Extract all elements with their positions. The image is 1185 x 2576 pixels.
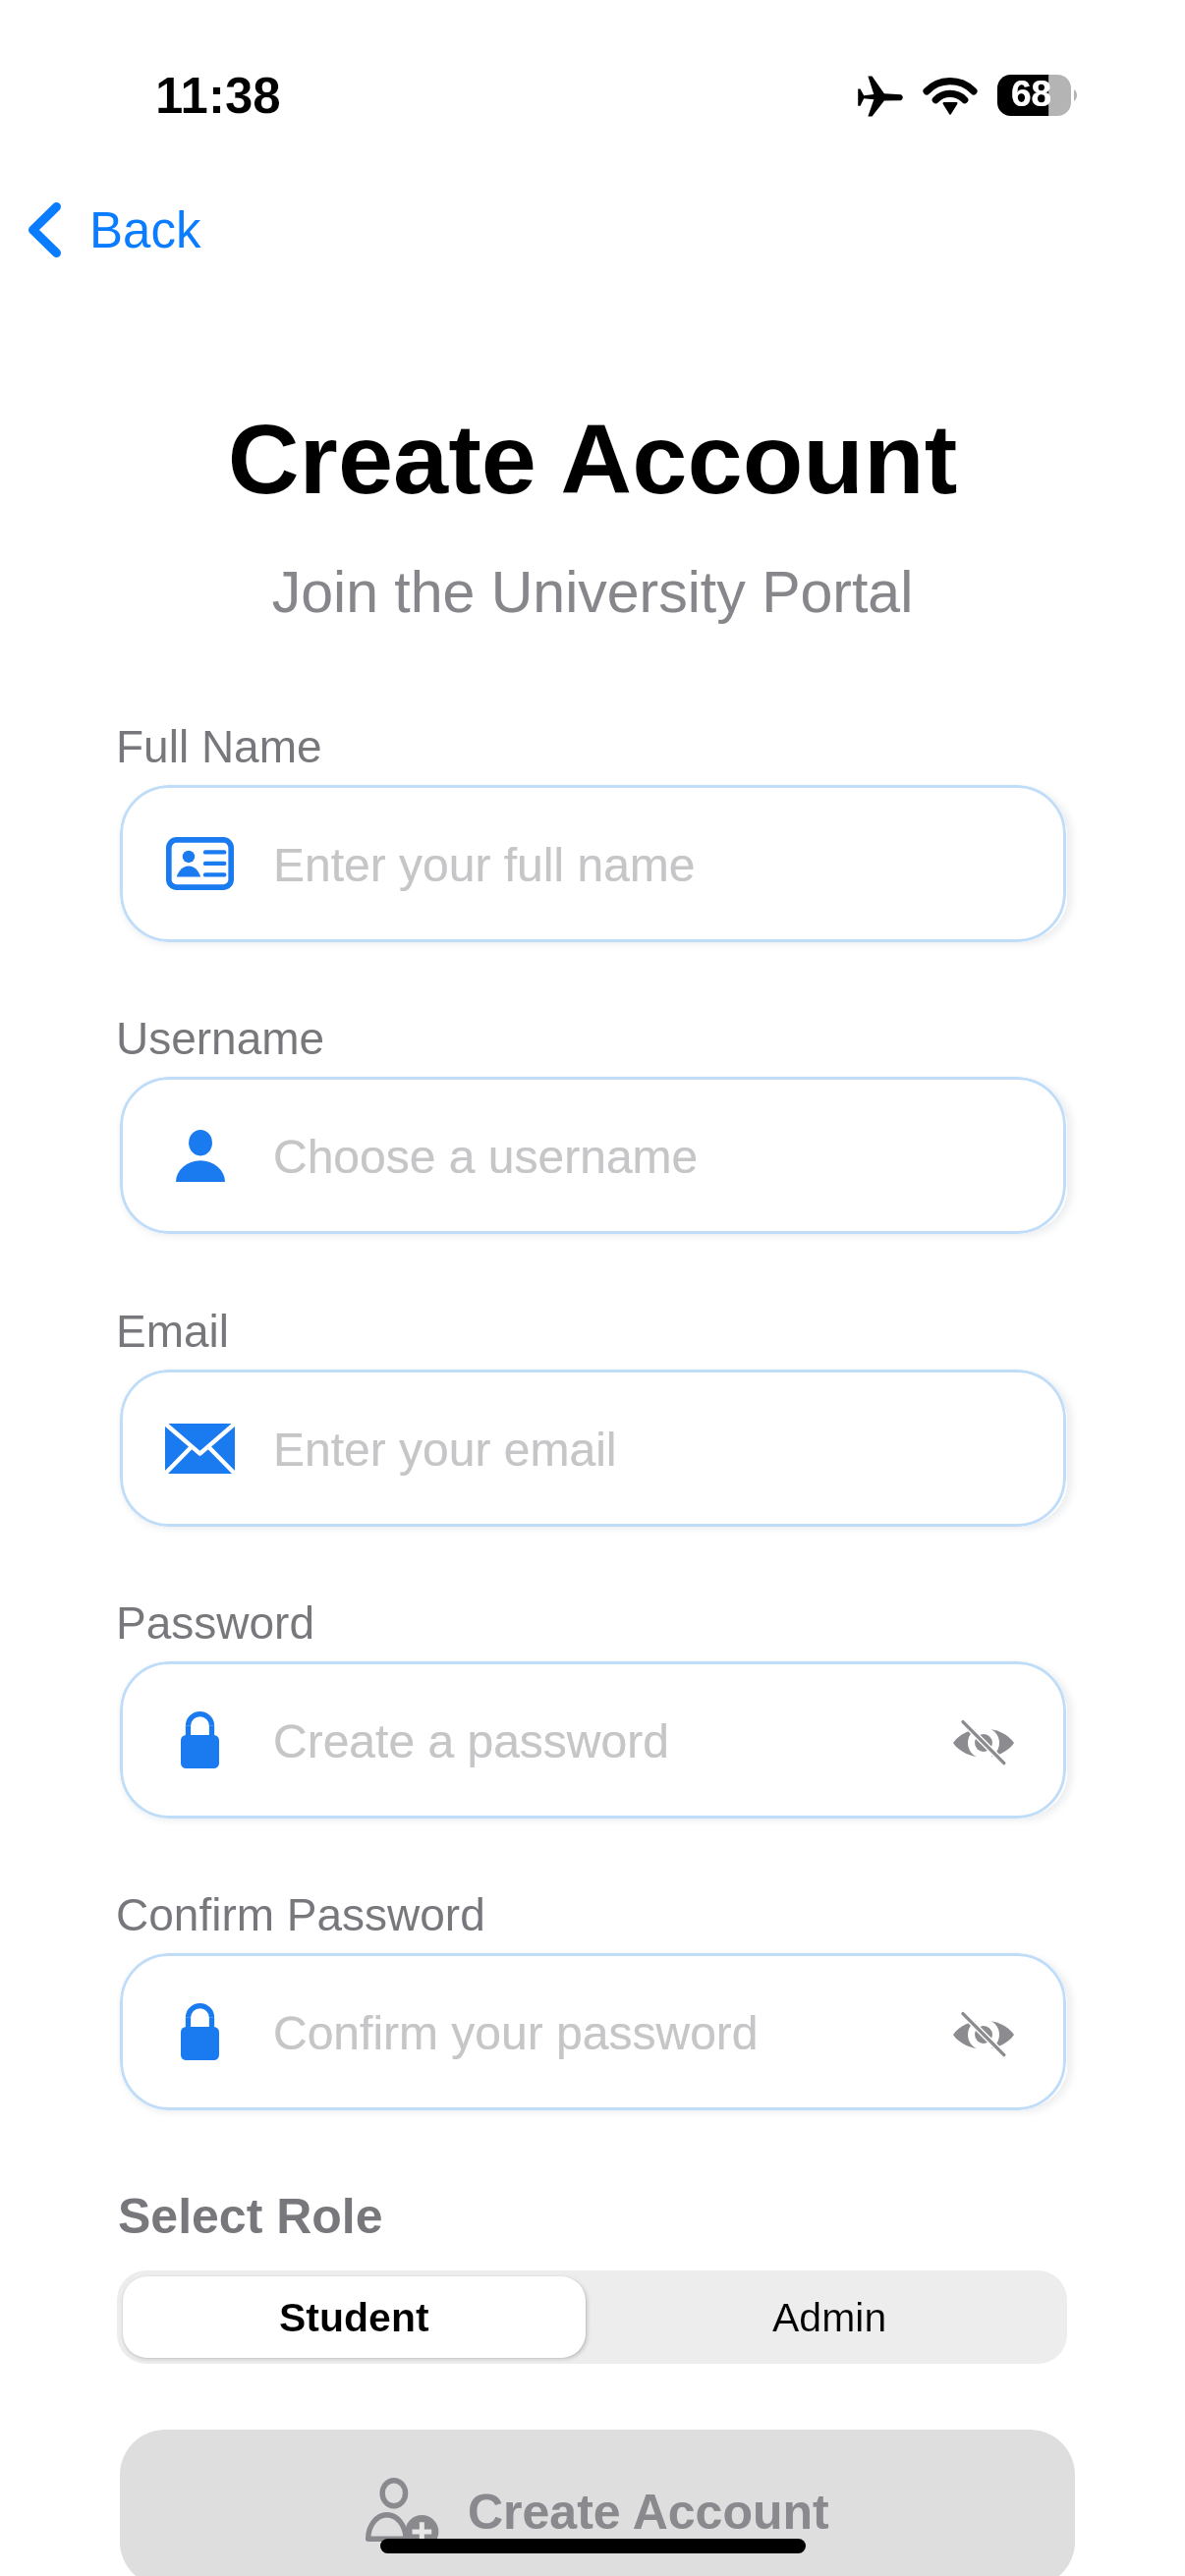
- staticText: Enter your full name: [273, 839, 696, 892]
- staticText: Choose a username: [273, 1131, 699, 1184]
- button[interactable]: Confirm your password: [120, 1953, 1066, 2110]
- staticText: 11:38: [155, 68, 281, 124]
- staticText: Select Role: [118, 2189, 383, 2244]
- staticText: Password: [116, 1597, 314, 1648]
- button[interactable]: Enter your full name: [120, 785, 1066, 942]
- staticText: Admin: [772, 2295, 887, 2340]
- staticText: Enter your email: [273, 1424, 617, 1477]
- staticText: Confirm Password: [116, 1889, 485, 1939]
- staticText: Student: [279, 2295, 429, 2340]
- staticText: Join the University Portal: [0, 560, 1185, 625]
- staticText: Create a password: [273, 1715, 669, 1768]
- button[interactable]: Student: [123, 2276, 586, 2358]
- staticText: 68: [1011, 74, 1052, 114]
- button[interactable]: Show password: [942, 1699, 1025, 1781]
- staticText: Username: [116, 1013, 325, 1063]
- staticText: Create Account: [0, 404, 1185, 515]
- staticText: Back: [89, 202, 201, 258]
- button[interactable]: Admin: [592, 2270, 1067, 2364]
- button[interactable]: Back: [9, 184, 221, 275]
- button[interactable]: Choose a username: [120, 1077, 1066, 1234]
- button[interactable]: Enter your email: [120, 1370, 1066, 1527]
- staticText: Confirm your password: [273, 2007, 759, 2060]
- button[interactable]: Create Account: [120, 2430, 1075, 2576]
- staticText: Email: [116, 1306, 230, 1356]
- button[interactable]: Show password: [942, 1990, 1025, 2073]
- button[interactable]: Create a password: [120, 1661, 1066, 1819]
- staticText: Full Name: [116, 721, 322, 771]
- staticText: Create Account: [468, 2485, 829, 2540]
